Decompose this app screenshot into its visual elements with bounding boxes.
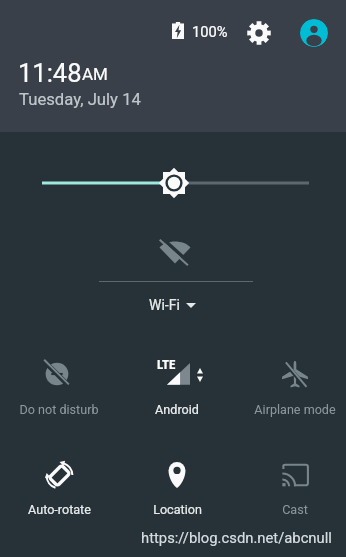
button[interactable]: Wi-Fi off — [158, 238, 192, 264]
button[interactable]: Auto-rotate — [0, 451, 118, 513]
button[interactable]: Battery 100 percent — [172, 24, 228, 41]
staticText: Auto-rotate — [28, 502, 91, 517]
button[interactable]: User profile — [300, 19, 328, 47]
staticText: https://blog.csdn.net/abcnull — [141, 529, 332, 546]
staticText: LTE — [157, 357, 176, 372]
button[interactable]: 11:48 — [18, 58, 108, 88]
staticText: Location — [153, 502, 202, 517]
button[interactable]: Brightness — [0, 160, 346, 206]
button[interactable]: Location — [118, 452, 236, 514]
button[interactable]: Wi-Fi — [145, 293, 200, 317]
button[interactable]: Airplane mode — [236, 350, 346, 412]
staticText: Wi-Fi — [149, 297, 180, 313]
staticText: Cast — [282, 502, 308, 517]
button[interactable]: Settings — [243, 17, 274, 48]
button[interactable]: Tuesday, July 14 — [19, 90, 141, 110]
staticText: AM — [82, 64, 108, 84]
staticText: 100% — [192, 23, 228, 40]
button[interactable]: Cast — [236, 448, 346, 510]
button[interactable]: Do not disturb — [0, 350, 118, 412]
button[interactable]: Mobile data Android — [118, 349, 236, 411]
staticText: 11:48 — [18, 58, 82, 88]
staticText: Airplane mode — [254, 402, 336, 417]
staticText: Do not disturb — [19, 402, 99, 417]
staticText: Android — [155, 402, 199, 417]
